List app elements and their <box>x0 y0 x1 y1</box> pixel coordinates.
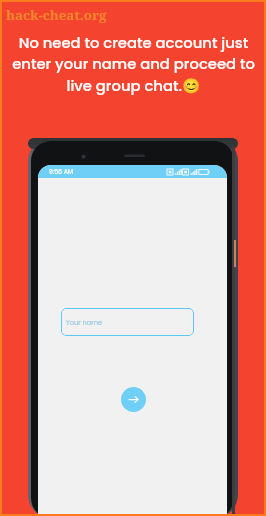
staticText: No need to create account just enter you… <box>12 32 255 96</box>
button[interactable]: Your name <box>61 308 194 336</box>
button[interactable]: Proceed <box>121 387 146 412</box>
staticText: 9:56 AM <box>49 167 74 176</box>
staticText: Your name <box>66 318 103 327</box>
staticText: hack-cheat.org <box>6 6 107 24</box>
